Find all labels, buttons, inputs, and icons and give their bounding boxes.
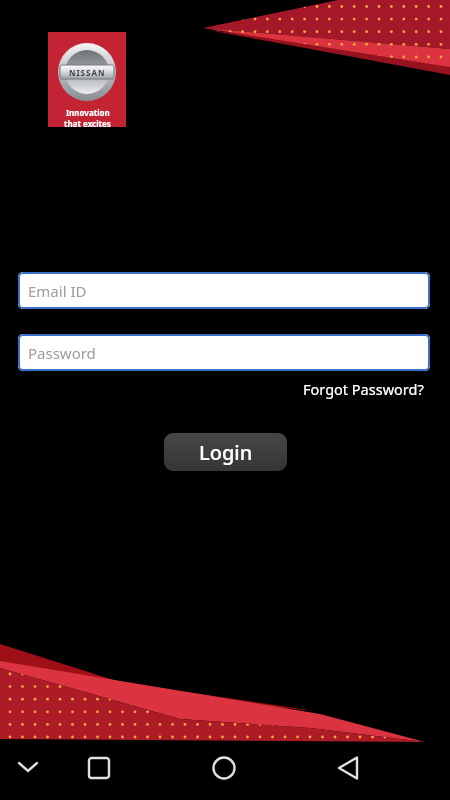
staticText: NISSAN: [69, 67, 106, 78]
button[interactable]: Email ID: [18, 272, 430, 309]
staticText: that excites: [64, 118, 111, 129]
button[interactable]: [204, 755, 244, 795]
staticText: Password: [28, 343, 96, 363]
button[interactable]: Password: [18, 334, 430, 371]
button[interactable]: Login: [164, 433, 287, 471]
staticText: Login: [199, 439, 253, 466]
button[interactable]: [79, 755, 119, 795]
button[interactable]: [10, 755, 50, 795]
staticText: Innovation: [66, 107, 110, 118]
button[interactable]: [328, 755, 368, 795]
staticText: Email ID: [28, 281, 87, 301]
button[interactable]: Forgot Password?: [303, 379, 424, 399]
